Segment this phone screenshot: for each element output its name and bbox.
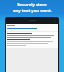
staticText: PRIVATE · ENCRYPTED · OFFLINE: [16, 16, 48, 19]
staticText: Securely store: [17, 2, 47, 8]
staticText: any text you want.: [13, 8, 52, 14]
button[interactable]: [6, 32, 58, 48]
button[interactable]: More options: [5, 17, 59, 72]
button[interactable]: More options: [6, 24, 58, 27]
button[interactable]: [6, 27, 58, 31]
